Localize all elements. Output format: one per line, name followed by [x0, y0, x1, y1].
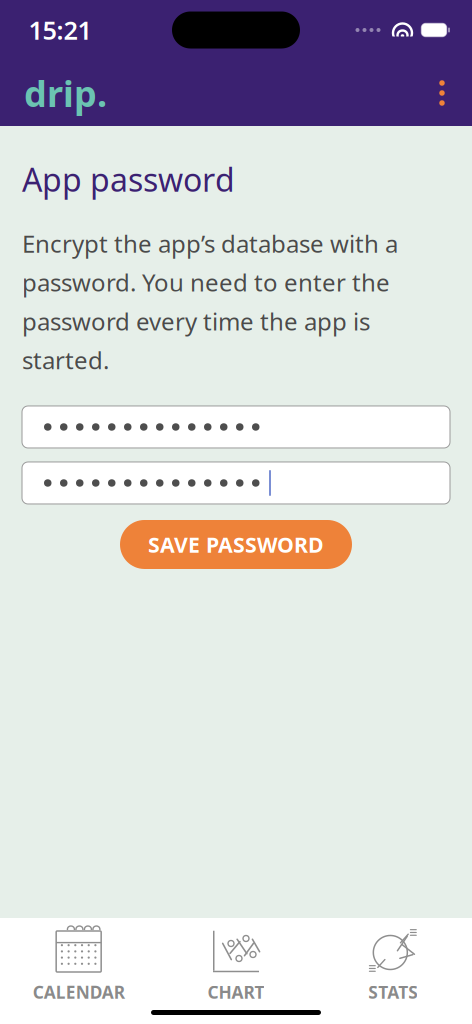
button[interactable]: STATS [315, 916, 472, 1011]
staticText: SAVE PASSWORD [148, 530, 324, 559]
staticText: 15:21 [28, 13, 91, 47]
staticText: App password [22, 158, 235, 200]
staticText: drip. [24, 69, 107, 117]
staticText: Encrypt the app’s database with a passwo… [22, 227, 398, 376]
staticText: CALENDAR [33, 980, 125, 1003]
button[interactable]: SAVE PASSWORD [120, 520, 352, 569]
staticText: CHART [207, 980, 264, 1003]
button[interactable]: CALENDAR [0, 916, 157, 1011]
button[interactable]: More options [420, 68, 464, 118]
button[interactable]: CHART [157, 916, 315, 1011]
staticText: STATS [368, 980, 418, 1003]
